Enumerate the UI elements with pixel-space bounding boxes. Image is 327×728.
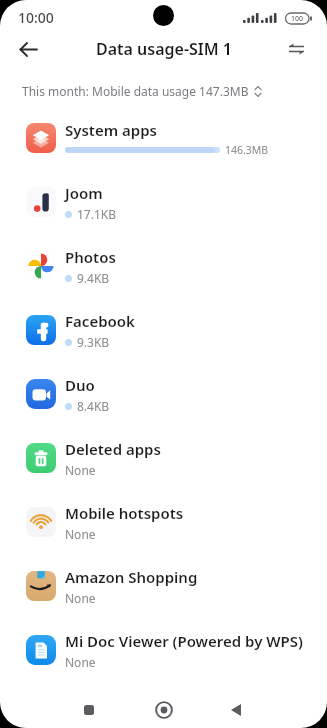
staticText: Data usage-SIM 1	[96, 38, 232, 60]
staticText: 100	[291, 14, 304, 24]
staticText: Photos	[65, 247, 116, 267]
button[interactable]	[231, 704, 241, 716]
staticText: Joom	[65, 183, 103, 203]
staticText: 9.3KB	[77, 334, 110, 350]
staticText: Duo	[65, 375, 95, 395]
staticText: Deleted apps	[65, 439, 161, 459]
button[interactable]: Deleted apps	[0, 426, 327, 490]
button[interactable]	[20, 41, 37, 58]
staticText: This month: Mobile data usage 147.3MB	[22, 83, 249, 99]
staticText: System apps	[65, 120, 157, 140]
button[interactable]	[288, 42, 305, 56]
staticText: None	[65, 526, 96, 542]
staticText: None	[65, 590, 96, 606]
button[interactable]	[84, 705, 94, 715]
button[interactable]: Facebook	[0, 298, 327, 362]
staticText: 10:00	[18, 8, 54, 27]
staticText: Mi Doc Viewer (Powered by WPS)	[65, 631, 303, 651]
staticText: None	[65, 654, 96, 670]
button[interactable]: Duo	[0, 362, 327, 426]
button[interactable]: Joom	[0, 170, 327, 234]
button[interactable]: Mi Doc Viewer (Powered by WPS)	[0, 618, 327, 682]
staticText: None	[65, 462, 96, 478]
staticText: Amazon Shopping	[65, 567, 198, 587]
staticText: Facebook	[65, 311, 135, 331]
staticText: 17.1KB	[77, 206, 117, 222]
button[interactable]	[155, 701, 173, 719]
button[interactable]: System apps	[0, 106, 327, 170]
staticText: Mobile hotspots	[65, 503, 184, 523]
staticText: 8.4KB	[77, 398, 110, 414]
button[interactable]: This month: Mobile data usage 147.3MB	[22, 76, 327, 106]
staticText: 146.3MB	[225, 143, 269, 157]
staticText: 9.4KB	[77, 270, 110, 286]
button[interactable]: Photos	[0, 234, 327, 298]
button[interactable]: Amazon Shopping	[0, 554, 327, 618]
button[interactable]: Mobile hotspots	[0, 490, 327, 554]
